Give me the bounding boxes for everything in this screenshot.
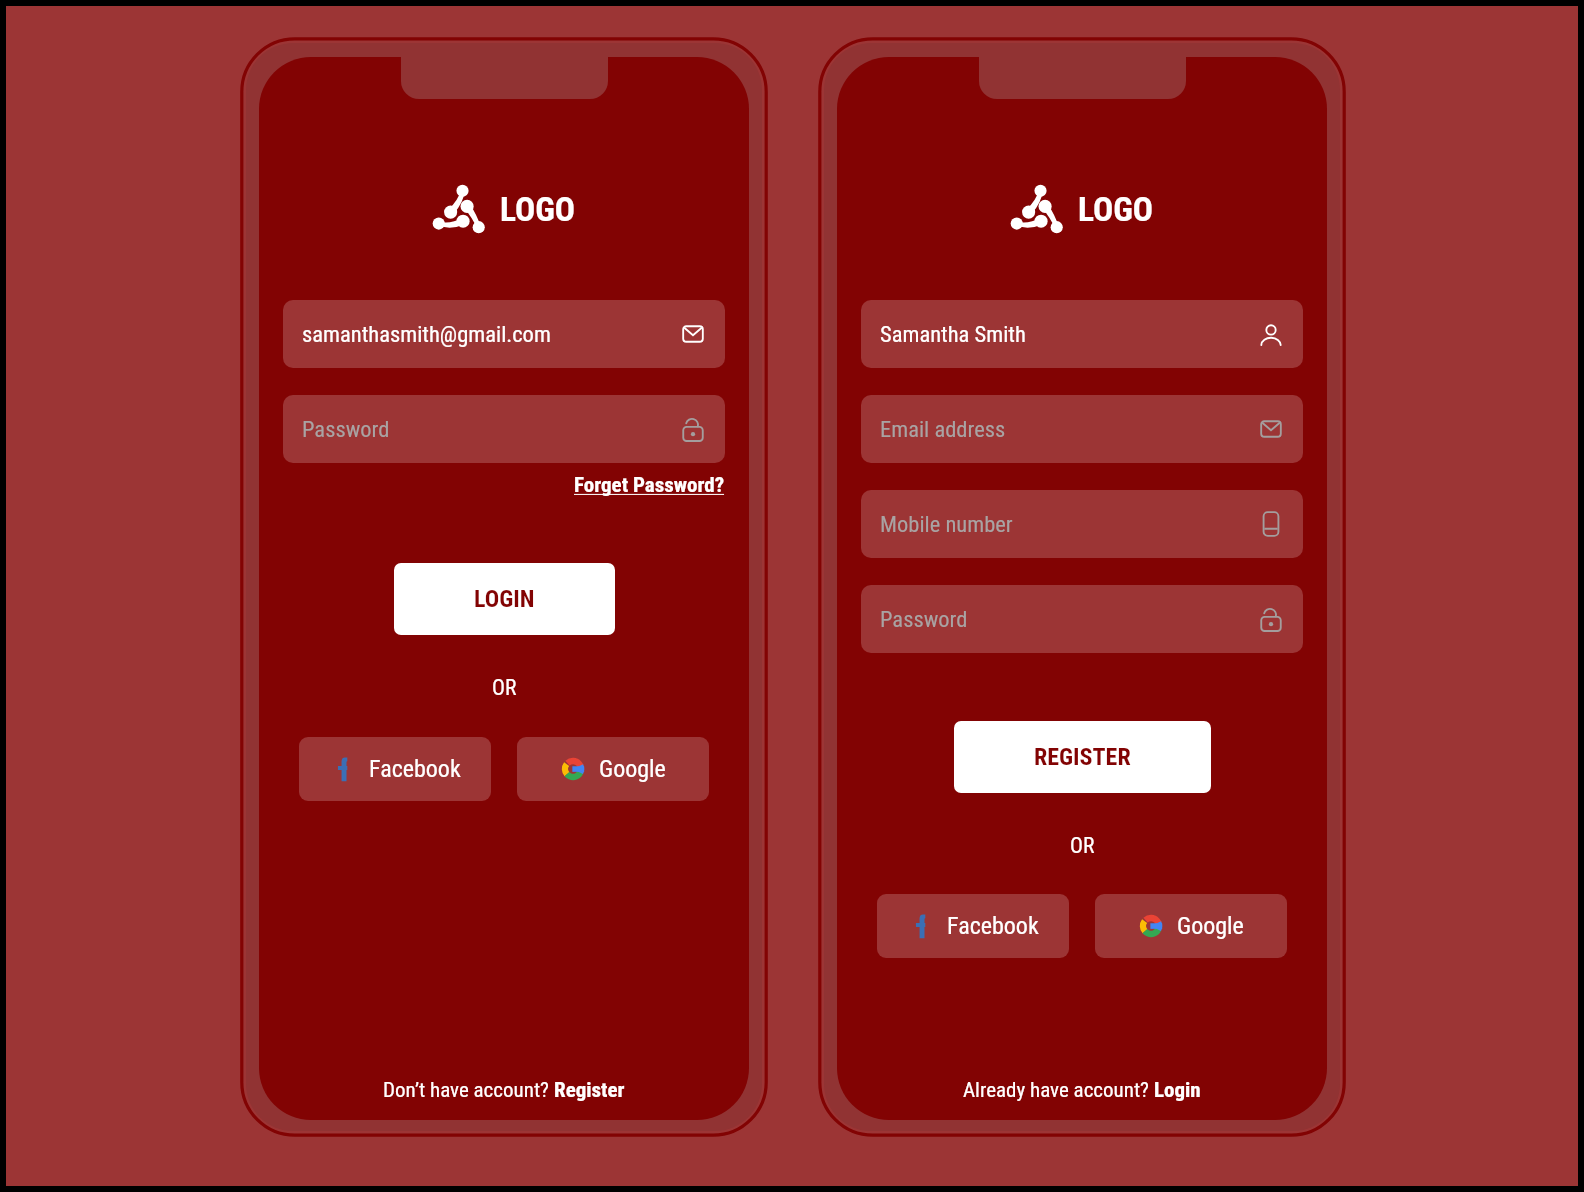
button[interactable]: Mobile number field: [861, 490, 1303, 558]
button[interactable]: Full name field: [861, 300, 1303, 368]
button[interactable]: Google: [517, 737, 709, 801]
button[interactable]: Email field: [861, 395, 1303, 463]
staticText: Facebook: [947, 912, 1039, 940]
button[interactable]: Don’t have account?: [259, 1078, 749, 1103]
staticText: Google: [599, 755, 666, 783]
staticText: Login: [1154, 1078, 1201, 1103]
button[interactable]: Password field: [861, 585, 1303, 653]
staticText: Facebook: [369, 755, 461, 783]
staticText: REGISTER: [1034, 743, 1131, 771]
staticText: Password: [880, 606, 968, 632]
staticText: Mobile number: [880, 511, 1013, 537]
staticText: Register: [554, 1078, 625, 1103]
staticText: samanthasmith@gmail.com: [302, 321, 551, 347]
staticText: LOGO: [500, 190, 576, 229]
button[interactable]: Facebook: [877, 894, 1069, 958]
button[interactable]: Forget Password?: [574, 473, 725, 498]
staticText: Don’t have account?: [383, 1078, 554, 1103]
button[interactable]: Google: [1095, 894, 1287, 958]
staticText: Already have account?: [963, 1078, 1154, 1103]
staticText: LOGO: [1078, 190, 1154, 229]
staticText: OR: [1070, 833, 1095, 858]
button[interactable]: LOGIN: [394, 563, 615, 635]
staticText: Email address: [880, 416, 1006, 442]
staticText: Samantha Smith: [880, 321, 1026, 347]
staticText: Password: [302, 416, 390, 442]
staticText: Google: [1177, 912, 1244, 940]
staticText: OR: [492, 675, 517, 700]
button[interactable]: Facebook: [299, 737, 491, 801]
button[interactable]: Email field: [283, 300, 725, 368]
staticText: LOGIN: [474, 585, 535, 613]
button[interactable]: REGISTER: [954, 721, 1211, 793]
button[interactable]: Already have account?: [837, 1078, 1327, 1103]
button[interactable]: Password field: [283, 395, 725, 463]
